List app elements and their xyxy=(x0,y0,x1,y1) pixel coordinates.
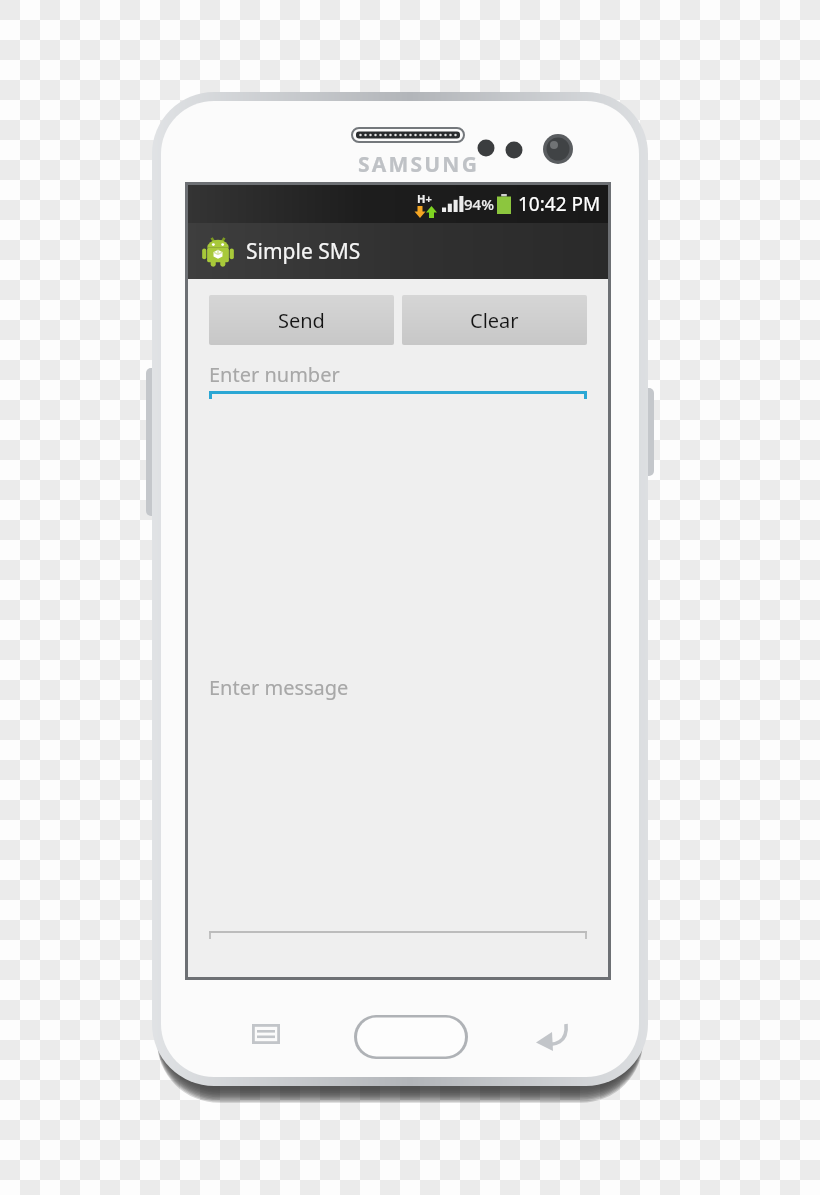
button[interactable]: Enter number xyxy=(209,357,587,399)
staticText: 94% xyxy=(464,194,494,214)
button[interactable]: Clear xyxy=(402,295,587,345)
staticText: Send xyxy=(278,307,325,334)
button[interactable]: Home xyxy=(352,1012,470,1062)
staticText: SAMSUNG xyxy=(358,150,480,179)
staticText: Simple SMS xyxy=(246,237,361,266)
button[interactable]: Menu xyxy=(244,1016,288,1054)
staticText: 10:42 PM xyxy=(518,191,601,217)
button[interactable]: Enter message xyxy=(209,399,587,959)
button[interactable]: Back xyxy=(530,1016,576,1054)
staticText: H+ xyxy=(417,191,432,206)
staticText: Enter number xyxy=(209,361,340,388)
button[interactable]: Send xyxy=(209,295,394,345)
staticText: Enter message xyxy=(209,674,349,701)
staticText: Clear xyxy=(470,307,519,334)
